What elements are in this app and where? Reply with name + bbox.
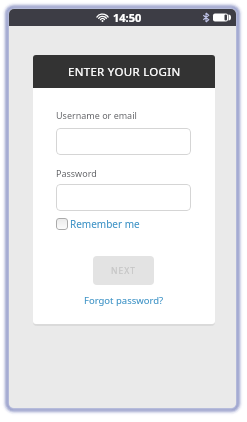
button[interactable]: NEXT	[93, 256, 154, 285]
staticText: Username or email	[56, 109, 137, 121]
staticText: Forgot password?	[84, 294, 164, 307]
staticText: NEXT	[111, 265, 136, 277]
staticText: ENTER YOUR LOGIN	[68, 64, 181, 80]
button[interactable]: Remember me	[56, 217, 140, 231]
staticText: Password	[56, 167, 97, 179]
button[interactable]	[56, 128, 191, 155]
staticText: 14:50	[113, 10, 142, 25]
button[interactable]: Forgot password?	[84, 294, 164, 307]
staticText: Remember me	[70, 217, 140, 231]
button[interactable]	[56, 184, 191, 211]
